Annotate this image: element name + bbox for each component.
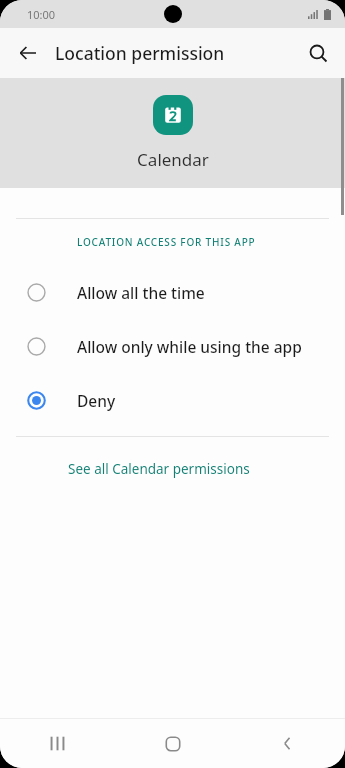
staticText: Allow only while using the app: [77, 336, 302, 357]
staticText: LOCATION ACCESS FOR THIS APP: [77, 235, 256, 249]
staticText: Calendar: [137, 148, 209, 171]
staticText: Location permission: [55, 41, 225, 65]
staticText: 10:00: [27, 7, 56, 22]
button[interactable]: Deny: [0, 373, 345, 427]
button[interactable]: See all Calendar permissions: [0, 456, 318, 482]
button[interactable]: Back: [10, 35, 46, 71]
staticText: Allow all the time: [77, 282, 205, 303]
button[interactable]: Allow all the time: [0, 265, 345, 319]
staticText: Deny: [77, 390, 116, 411]
button[interactable]: Home: [115, 719, 230, 768]
button[interactable]: Back: [230, 719, 345, 768]
staticText: See all Calendar permissions: [68, 460, 250, 478]
button[interactable]: Recent apps: [0, 719, 115, 768]
button[interactable]: Allow only while using the app: [0, 319, 345, 373]
button[interactable]: Search: [300, 35, 336, 71]
